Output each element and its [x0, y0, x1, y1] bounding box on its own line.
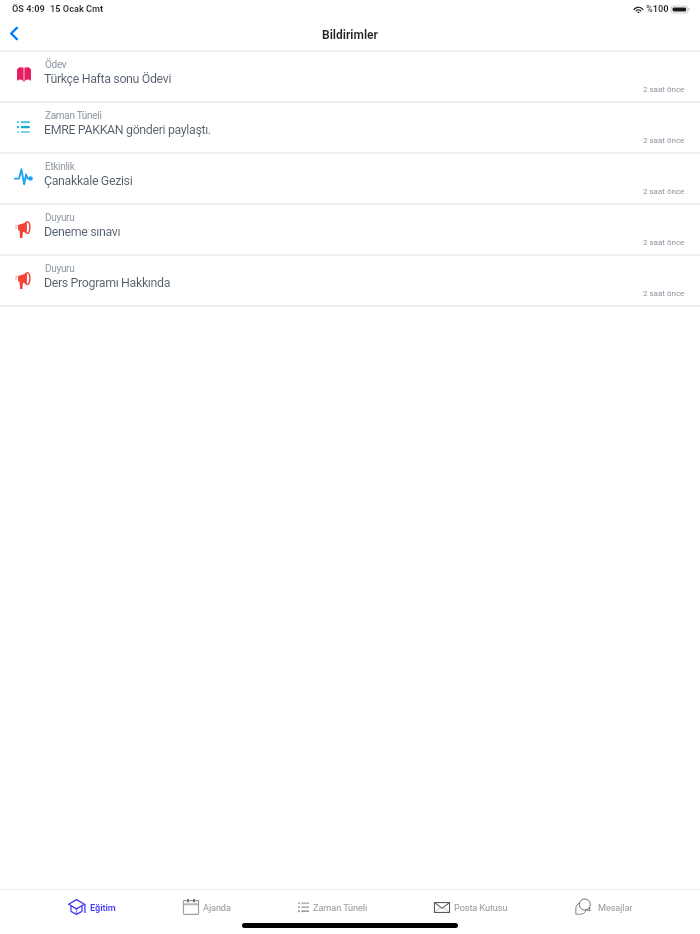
staticText: %100: [646, 3, 669, 14]
button[interactable]: Zaman Tüneli: [298, 890, 368, 919]
button[interactable]: Posta Kutusu: [434, 890, 508, 919]
staticText: Zaman Tüneli: [313, 902, 368, 913]
button[interactable]: Zaman Tüneli: [0, 103, 700, 154]
staticText: Etkinlik: [45, 161, 75, 173]
staticText: Deneme sınavı: [44, 224, 121, 239]
button[interactable]: Duyuru: [0, 205, 700, 256]
staticText: 15 Ocak Cmt: [50, 3, 104, 14]
staticText: Mesajlar: [598, 902, 633, 913]
button[interactable]: Duyuru: [0, 256, 700, 307]
button[interactable]: Eğitim: [67, 890, 116, 919]
staticText: EMRE PAKKAN gönderi paylaştı.: [44, 122, 211, 137]
staticText: 2 saat önce: [643, 289, 685, 298]
staticText: 2 saat önce: [643, 136, 685, 145]
staticText: Duyuru: [45, 263, 75, 275]
staticText: Duyuru: [45, 212, 75, 224]
staticText: Bildirimler: [322, 28, 378, 42]
button[interactable]: Back: [1, 20, 27, 46]
button[interactable]: Ajanda: [183, 890, 231, 919]
staticText: Posta Kutusu: [454, 902, 508, 913]
staticText: 2 saat önce: [643, 85, 685, 94]
staticText: ÖS 4:09: [12, 3, 45, 14]
staticText: 2 saat önce: [643, 238, 685, 247]
staticText: Ajanda: [203, 902, 231, 913]
staticText: Ödev: [45, 59, 67, 71]
staticText: Eğitim: [90, 902, 116, 913]
staticText: Çanakkale Gezisi: [44, 173, 133, 188]
staticText: Zaman Tüneli: [45, 110, 102, 122]
button[interactable]: Etkinlik: [0, 154, 700, 205]
staticText: Türkçe Hafta sonu Ödevi: [44, 71, 172, 86]
button[interactable]: Ödev: [0, 52, 700, 103]
staticText: 2 saat önce: [643, 187, 685, 196]
button[interactable]: Mesajlar: [575, 890, 633, 919]
staticText: Ders Programı Hakkında: [44, 275, 171, 290]
